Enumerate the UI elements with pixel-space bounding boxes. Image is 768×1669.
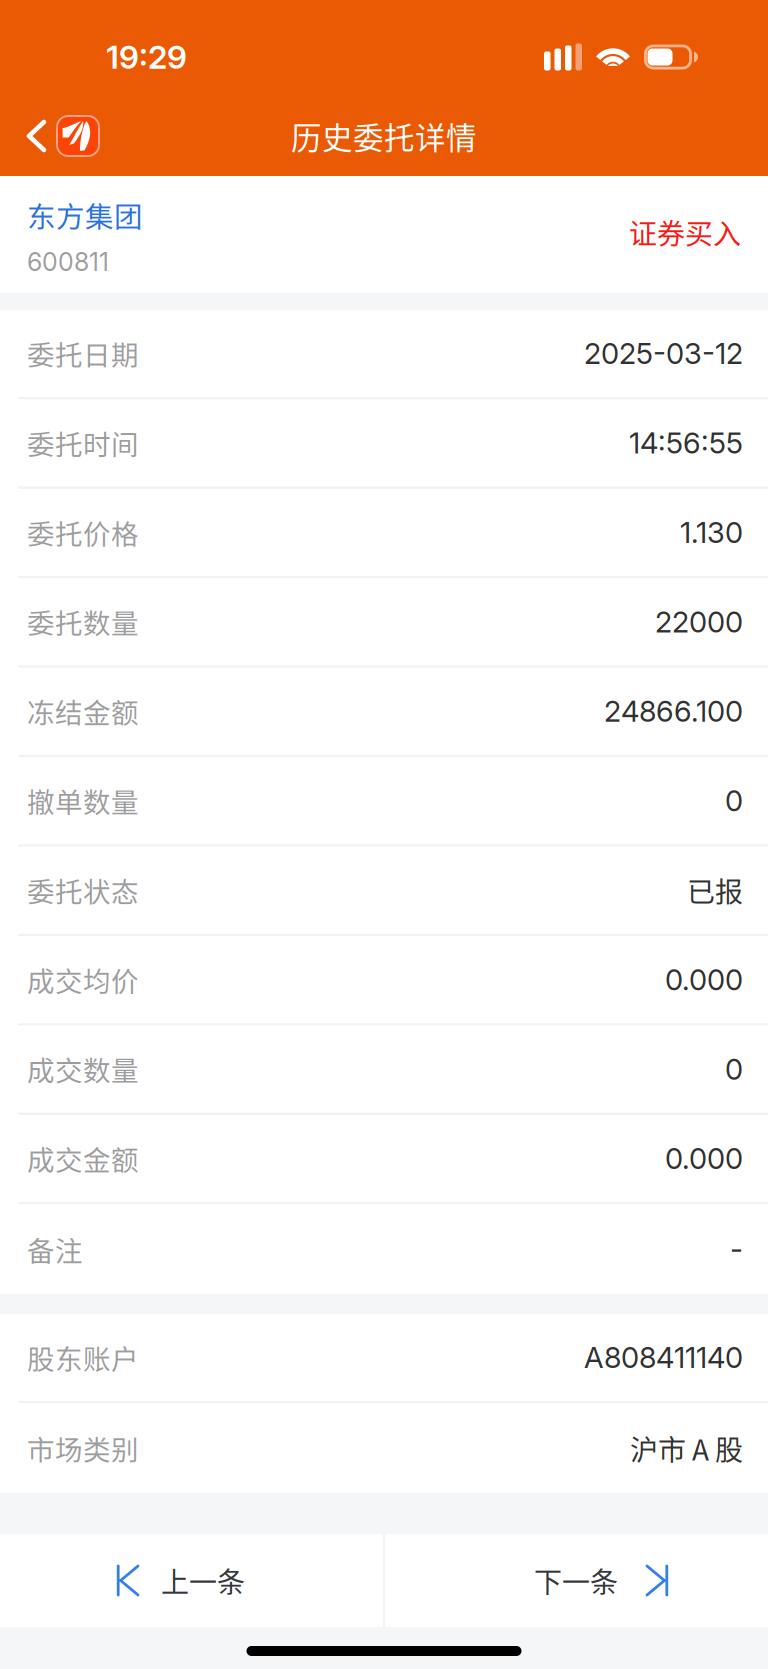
staticText: 历史委托详情 [291,114,477,158]
staticText: - [730,1232,743,1267]
button[interactable]: 上一条 [0,1534,383,1627]
staticText: 沪市 A 股 [630,1428,743,1468]
staticText: 2025-03-12 [584,336,743,371]
staticText: 成交均价 [27,960,139,1000]
staticText: 备注 [27,1229,83,1269]
staticText: 冻结金额 [27,691,139,731]
staticText: 19:29 [106,38,187,76]
staticText: 0.000 [665,962,743,997]
staticText: 委托日期 [27,334,139,373]
staticText: 600811 [27,247,109,277]
staticText: 已报 [687,870,743,910]
staticText: 委托数量 [27,602,139,642]
staticText: 0 [725,783,743,818]
staticText: 委托价格 [27,512,139,552]
staticText: 委托状态 [27,870,139,910]
staticText: 成交数量 [27,1049,139,1089]
staticText: 市场类别 [27,1428,139,1468]
staticText: 东方集团 [27,194,143,236]
staticText: 0.000 [665,1141,743,1176]
staticText: 证券买入 [629,212,741,252]
staticText: 22000 [655,604,743,639]
staticText: 上一条 [161,1560,245,1601]
staticText: 委托时间 [27,423,139,463]
staticText: 下一条 [534,1560,618,1601]
staticText: 0 [725,1052,743,1087]
staticText: 股东账户 [27,1338,139,1377]
staticText: 撤单数量 [27,781,139,821]
button[interactable]: 下一条 [384,1534,768,1627]
staticText: A808411140 [584,1340,743,1375]
staticText: 1.130 [680,515,743,550]
staticText: 24866.100 [604,694,743,729]
staticText: 成交金额 [27,1139,139,1178]
staticText: 14:56:55 [629,425,743,460]
button[interactable]: Back [0,96,118,176]
